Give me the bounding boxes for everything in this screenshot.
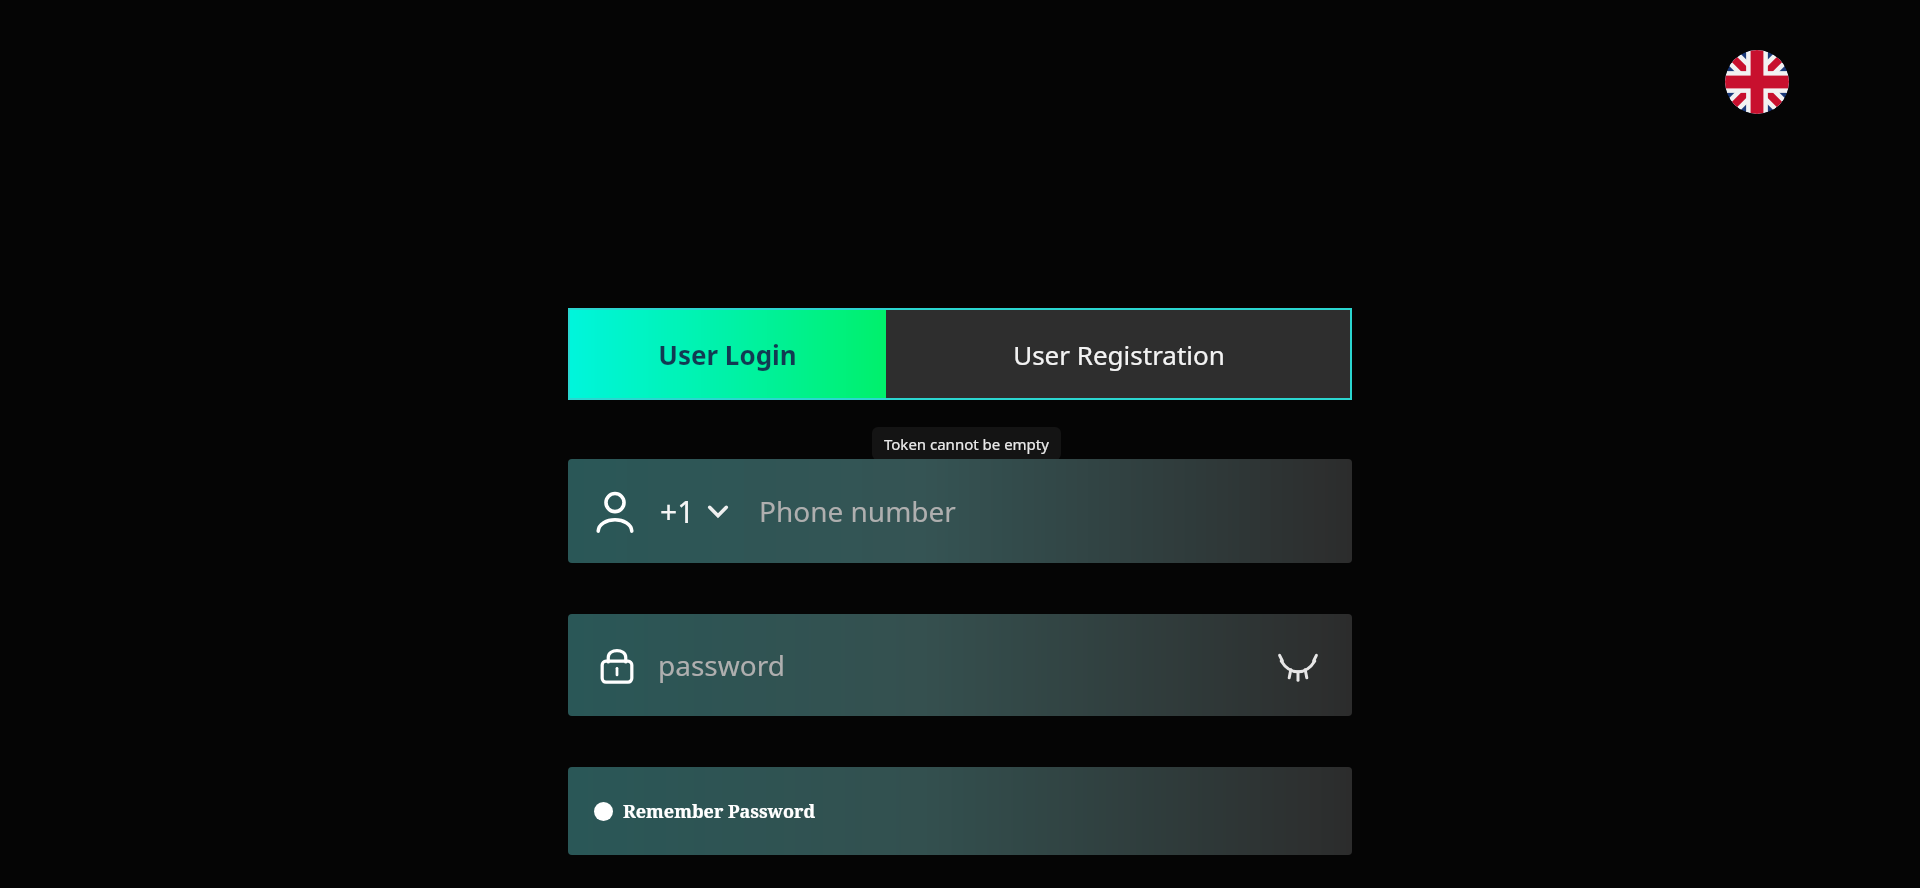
staticText: Remember Password: [623, 799, 816, 824]
button[interactable]: Remember Password: [568, 767, 1352, 855]
staticText: +1: [660, 491, 695, 532]
button[interactable]: Change language: [1725, 50, 1789, 114]
staticText: password: [658, 646, 785, 684]
button[interactable]: User Registration: [886, 308, 1352, 400]
staticText: Phone number: [759, 492, 956, 530]
staticText: Token cannot be empty: [884, 434, 1049, 454]
staticText: User Login: [658, 337, 797, 372]
staticText: User Registration: [1013, 337, 1225, 372]
button[interactable]: User Login: [568, 308, 886, 400]
button[interactable]: Show password: [1266, 633, 1330, 697]
button[interactable]: password: [568, 614, 1352, 716]
button[interactable]: +1: [568, 459, 1352, 563]
